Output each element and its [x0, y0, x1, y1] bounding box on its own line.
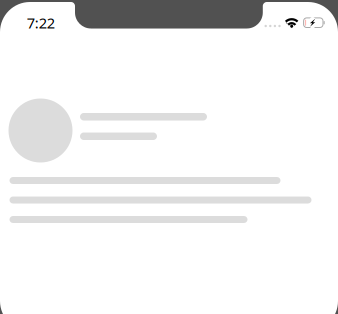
- staticText: 7:22: [27, 13, 55, 32]
